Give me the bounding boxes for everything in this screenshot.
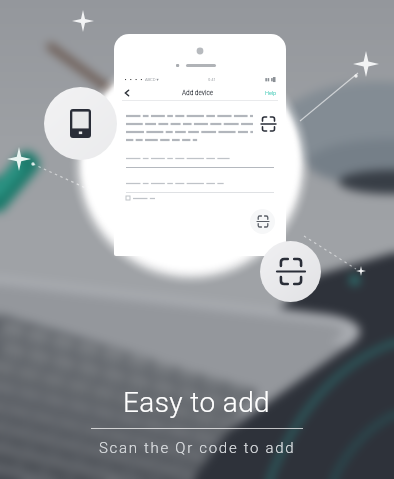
- staticText: Help: [265, 90, 277, 96]
- staticText: 9:41: [208, 77, 216, 82]
- button[interactable]: Phone: [44, 87, 117, 160]
- staticText: Easy to add: [123, 386, 271, 419]
- staticText: Scan the Qr code to add: [99, 439, 296, 457]
- staticText: ▮▮ ▮▊: [265, 77, 277, 82]
- button[interactable]: Scan: [250, 209, 275, 234]
- staticText: Add device: [182, 89, 214, 97]
- staticText: ▪▪▪▪ ABCD ▾: [123, 77, 159, 82]
- other: Back: [123, 89, 131, 97]
- button[interactable]: Scan QR code: [260, 241, 321, 302]
